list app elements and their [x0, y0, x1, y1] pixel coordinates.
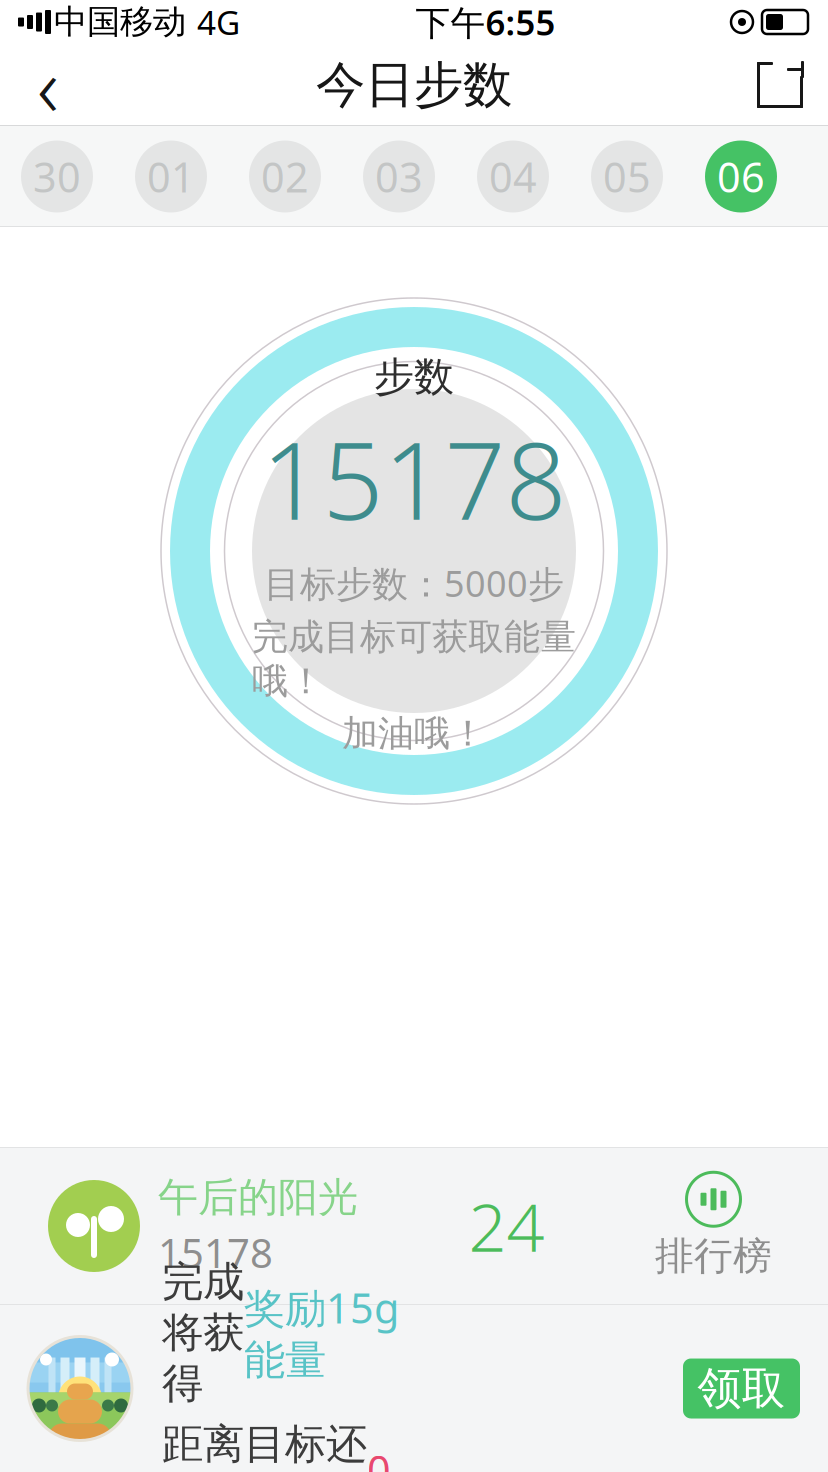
button[interactable]: 03 — [342, 126, 456, 227]
staticText: 完成将获得 — [162, 1257, 244, 1409]
staticText: 中国移动 — [54, 1, 186, 42]
staticText: 02 — [261, 149, 309, 204]
button[interactable]: 02 — [228, 126, 342, 227]
button[interactable]: Back — [0, 44, 96, 126]
staticText: 03 — [375, 149, 423, 204]
staticText: 30 — [33, 149, 81, 204]
button[interactable]: Share — [732, 44, 828, 126]
staticText: 04 — [489, 149, 537, 204]
staticText: 01 — [147, 149, 195, 204]
staticText: 完成目标可获取能量哦！ — [252, 615, 576, 703]
staticText: 4G — [197, 0, 240, 44]
staticText: 0 — [367, 1442, 391, 1472]
staticText: 距离目标还有 — [162, 1419, 367, 1472]
staticText: 06 — [717, 149, 765, 204]
staticText: 下午6:55 — [415, 0, 555, 45]
staticText: 24 — [468, 1182, 544, 1270]
button[interactable]: 05 — [570, 126, 684, 227]
staticText: 15178 — [158, 1226, 273, 1279]
button[interactable]: 领取 — [683, 1358, 800, 1418]
staticText: 05 — [603, 149, 651, 204]
button[interactable]: 01 — [114, 126, 228, 227]
staticText: 加油哦！ — [342, 711, 486, 756]
staticText: 步数 — [374, 352, 454, 401]
staticText: 排行榜 — [655, 1232, 772, 1280]
staticText: 今日步数 — [316, 55, 512, 115]
staticText: 目标步数：5000步 — [264, 559, 564, 607]
staticText: 15178 — [261, 407, 566, 549]
staticText: 午后的阳光 — [158, 1173, 358, 1222]
button[interactable]: 04 — [456, 126, 570, 227]
staticText: 奖励15g能量 — [244, 1280, 399, 1386]
button[interactable]: 06 — [684, 126, 798, 227]
button[interactable]: 30 — [0, 126, 114, 227]
staticText: 领取 — [697, 1361, 785, 1415]
staticText: ‹ — [37, 30, 59, 140]
button[interactable]: 午后的阳光 — [0, 1147, 828, 1305]
